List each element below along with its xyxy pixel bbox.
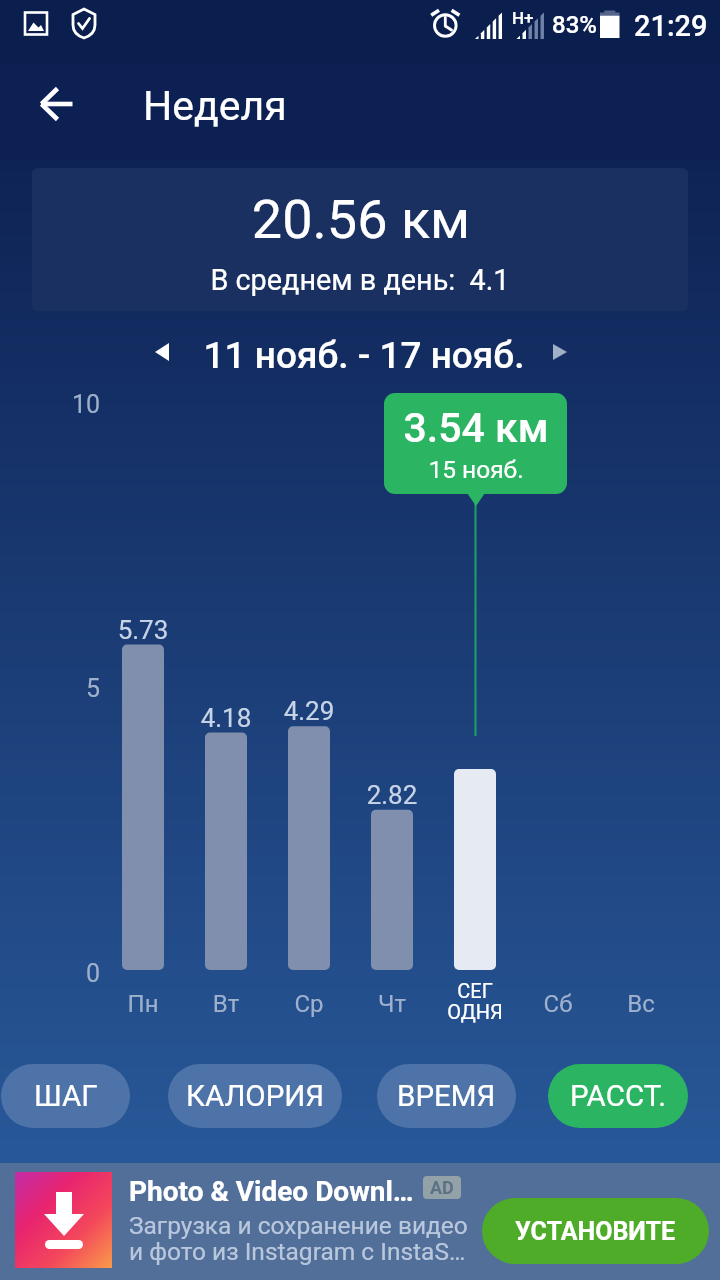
staticText: 4.29 [239, 696, 379, 726]
staticText: КАЛОРИЯ [186, 1079, 325, 1114]
staticText: 5.73 [73, 615, 213, 645]
button[interactable]: РАССТ. [548, 1064, 688, 1128]
staticText: 15 нояб. [386, 455, 566, 484]
button[interactable]: КАЛОРИЯ [168, 1064, 342, 1128]
staticText: AD [430, 1177, 454, 1198]
staticText: 20.56 км [61, 188, 661, 251]
staticText: Загрузка и сохранение видео [129, 1211, 468, 1240]
staticText: Неделя [143, 82, 287, 130]
button[interactable]: 20.56 км [32, 168, 688, 311]
staticText: H+ [512, 8, 534, 28]
staticText: Вс [581, 990, 701, 1018]
staticText: 11 нояб. - 17 нояб. [124, 334, 604, 377]
staticText: ВРЕМЯ [397, 1079, 496, 1114]
button[interactable]: Next week [536, 328, 584, 376]
staticText: В среднем в день: 4.1 [60, 263, 660, 297]
staticText: Ср [249, 990, 369, 1018]
staticText: ШАГ [34, 1079, 98, 1114]
staticText: и фото из Instagram с InstaS… [129, 1237, 466, 1266]
staticText: РАССТ. [570, 1079, 666, 1114]
staticText: Вт [166, 990, 286, 1018]
staticText: 3.54 км [386, 404, 566, 452]
staticText: Пн [83, 990, 203, 1018]
staticText: Чт [332, 990, 452, 1018]
staticText: УСТАНОВИТЕ [515, 1217, 676, 1246]
staticText: 10 [0, 390, 100, 419]
button[interactable]: Back [26, 81, 88, 143]
staticText: Сб [498, 990, 618, 1018]
staticText: 83% [552, 11, 597, 39]
button[interactable]: ВРЕМЯ [377, 1064, 516, 1128]
staticText: 4.18 [156, 703, 296, 733]
button[interactable]: 3.54 км [384, 393, 567, 494]
button[interactable]: ШАГ [1, 1064, 130, 1128]
staticText: 5 [0, 674, 100, 703]
staticText: Photo & Video Downl… [129, 1175, 414, 1208]
staticText: 2.82 [322, 780, 462, 810]
button[interactable]: УСТАНОВИТЕ [482, 1198, 709, 1264]
staticText: 21:29 [634, 9, 708, 43]
button[interactable]: Previous week [138, 328, 186, 376]
button[interactable]: Photo & Video Downl… [0, 1163, 720, 1280]
staticText: 0 [0, 959, 100, 988]
staticText: СЕГ ОДНЯ [415, 979, 535, 1024]
